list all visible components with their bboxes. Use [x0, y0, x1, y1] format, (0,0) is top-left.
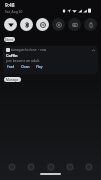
staticText: Feed	[7, 65, 15, 69]
staticText: Clean	[21, 65, 30, 69]
staticText: Manage	[6, 78, 19, 82]
button[interactable]: Play Store	[66, 163, 74, 171]
button[interactable]: Play	[35, 65, 44, 69]
button[interactable]: Bluetooth	[20, 18, 33, 31]
staticText: 9:48	[5, 2, 15, 9]
button[interactable]: Manage	[4, 77, 21, 82]
button[interactable]: Feed	[6, 65, 16, 69]
button[interactable]: Flashlight	[52, 18, 65, 31]
staticText: just became an adult.	[6, 58, 41, 63]
staticText: Play	[36, 65, 43, 69]
staticText: Sat, Aug 30	[5, 9, 23, 13]
button[interactable]: Do Not Disturb	[36, 18, 49, 31]
button[interactable]: Camera	[8, 163, 16, 171]
staticText: Coffin	[6, 53, 18, 58]
button[interactable]: Silent	[4, 37, 15, 42]
staticText: tamagotchi-clone	[11, 48, 37, 52]
staticText: • now	[38, 48, 47, 52]
staticText: Silent	[5, 38, 14, 42]
button[interactable]: Internet	[4, 18, 17, 31]
button[interactable]: Auto-rotate	[68, 18, 81, 31]
button[interactable]: Clean	[20, 65, 31, 69]
button[interactable]: Telegram	[47, 163, 55, 171]
button[interactable]: Battery Saver	[84, 18, 97, 31]
button[interactable]: tamagotchi-clone	[3, 46, 98, 74]
button[interactable]: Phone	[27, 163, 35, 171]
button[interactable]: Music	[85, 163, 93, 171]
